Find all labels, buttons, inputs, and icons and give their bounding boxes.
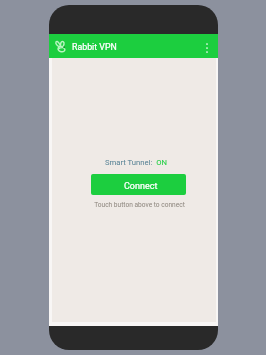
staticText: Rabbit VPN (72, 42, 117, 52)
staticText: Connect (124, 181, 158, 192)
button[interactable]: Connect (91, 174, 186, 195)
staticText: Smart Tunnel: ON (105, 158, 167, 167)
button[interactable]: More options (199, 40, 215, 56)
staticText: Touch button above to connect (94, 201, 185, 209)
